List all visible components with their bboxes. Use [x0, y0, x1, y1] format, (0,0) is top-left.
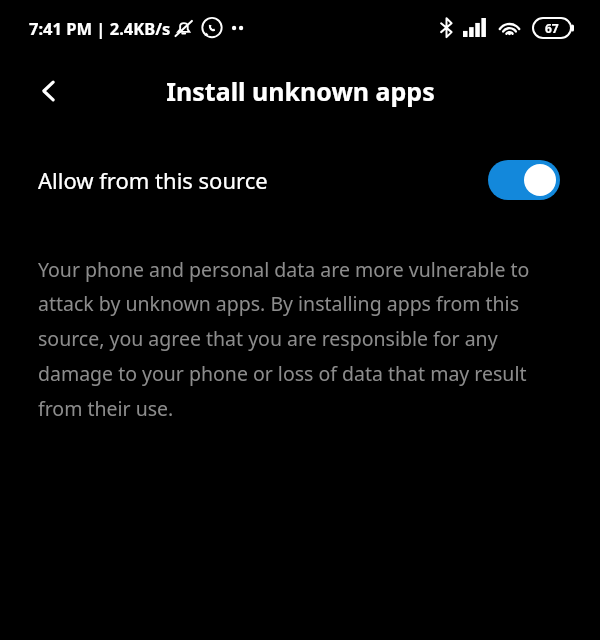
- button[interactable]: Back: [25, 67, 73, 115]
- staticText: Your phone and personal data are more vu…: [38, 256, 542, 422]
- staticText: 67: [545, 20, 559, 36]
- button[interactable]: Allow from this source: [0, 149, 600, 211]
- staticText: Install unknown apps: [166, 74, 435, 108]
- staticText: 7:41 PM | 2.4KB/s: [29, 17, 171, 39]
- staticText: Allow from this source: [38, 165, 268, 195]
- button[interactable]: Allow from this source toggle, on: [488, 160, 560, 200]
